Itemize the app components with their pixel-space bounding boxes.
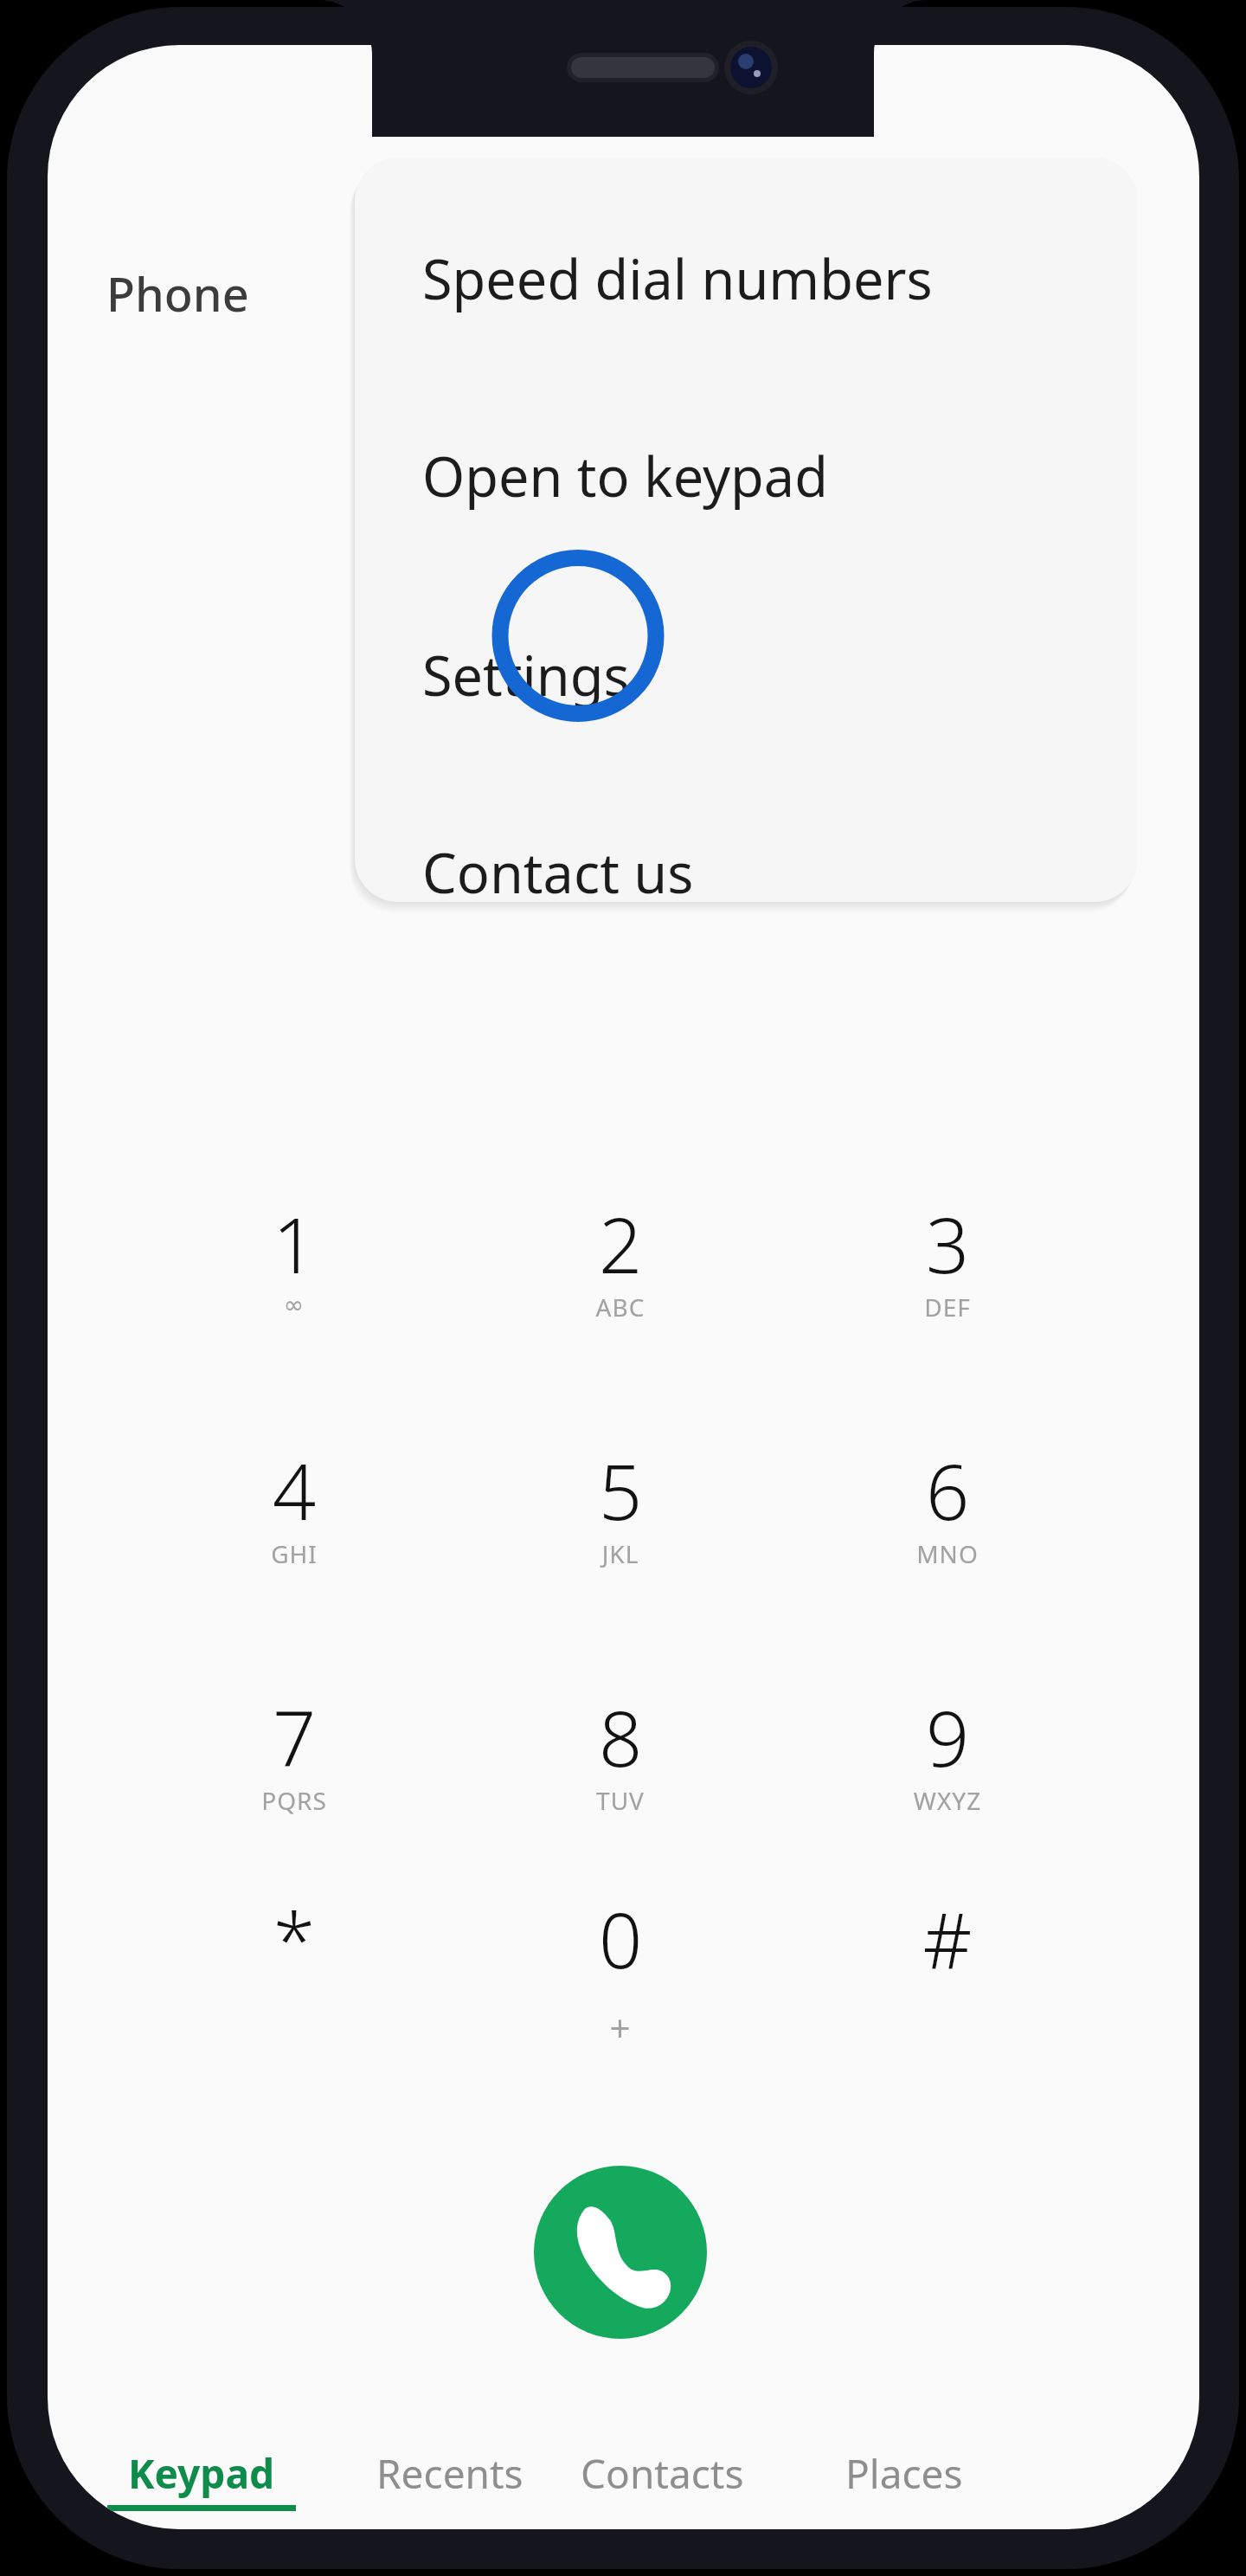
staticText: 2 xyxy=(491,1192,750,1296)
staticText: Contact us xyxy=(422,835,694,902)
button[interactable]: Speed dial numbers xyxy=(355,227,1138,331)
staticText: ABC xyxy=(491,1291,750,1323)
button[interactable]: 1 xyxy=(164,1192,424,1387)
staticText: Settings xyxy=(422,638,630,712)
staticText: WXYZ xyxy=(818,1784,1077,1817)
staticText: 5 xyxy=(491,1439,750,1542)
staticText: JKL xyxy=(491,1537,750,1570)
button[interactable]: # xyxy=(818,1887,1077,2082)
button[interactable]: 9 xyxy=(818,1685,1077,1880)
button[interactable]: Settings xyxy=(355,623,1138,727)
staticText: Places xyxy=(845,2446,963,2501)
staticText: 7 xyxy=(164,1685,424,1789)
staticText: Recents xyxy=(376,2446,523,2501)
staticText: 4 xyxy=(164,1439,424,1542)
staticText: # xyxy=(818,1887,1077,1991)
staticText: Keypad xyxy=(128,2446,275,2501)
button[interactable]: 4 xyxy=(164,1439,424,1633)
staticText: + xyxy=(491,2003,750,2052)
staticText: 3 xyxy=(818,1192,1077,1296)
button[interactable]: Contacts xyxy=(532,2417,792,2529)
staticText: 8 xyxy=(491,1685,750,1789)
button[interactable]: * xyxy=(164,1887,424,2082)
button[interactable]: Recents xyxy=(320,2417,580,2529)
staticText: Phone xyxy=(106,261,249,325)
button[interactable]: Keypad xyxy=(72,2417,331,2529)
button[interactable]: Contact us xyxy=(355,821,1138,902)
staticText: Open to keypad xyxy=(422,439,828,513)
button[interactable]: 0 xyxy=(491,1887,750,2082)
staticText: Speed dial numbers xyxy=(422,241,933,316)
staticText: 0 xyxy=(491,1887,750,1991)
staticText: ∞ xyxy=(164,1291,424,1319)
staticText: TUV xyxy=(491,1784,750,1817)
button[interactable]: 2 xyxy=(491,1192,750,1387)
button[interactable]: Open to keypad xyxy=(355,424,1138,528)
button[interactable]: 3 xyxy=(818,1192,1077,1387)
button[interactable]: 8 xyxy=(491,1685,750,1880)
staticText: GHI xyxy=(164,1537,424,1570)
staticText: Contacts xyxy=(581,2446,744,2501)
staticText: DEF xyxy=(818,1291,1077,1323)
staticText: MNO xyxy=(818,1537,1077,1570)
button[interactable]: 7 xyxy=(164,1685,424,1880)
button[interactable]: 5 xyxy=(491,1439,750,1633)
staticText: 9 xyxy=(818,1685,1077,1789)
button[interactable]: 6 xyxy=(818,1439,1077,1633)
button[interactable]: Call xyxy=(534,2166,707,2339)
staticText: 6 xyxy=(818,1439,1077,1542)
button[interactable]: Places xyxy=(774,2417,1034,2529)
staticText: 1 xyxy=(164,1192,424,1296)
staticText: PQRS xyxy=(164,1784,424,1817)
staticText: * xyxy=(164,1887,424,1991)
